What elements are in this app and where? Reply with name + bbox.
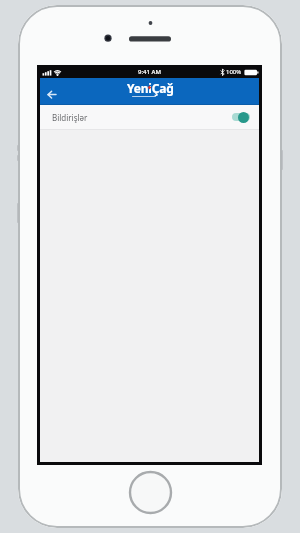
staticText: Bildirişlər: [52, 112, 88, 123]
button[interactable]: [232, 111, 250, 123]
staticText: 9:41 AM: [138, 68, 161, 76]
button[interactable]: Bildirişlər: [40, 105, 259, 129]
staticText: YeniÇağ: [127, 80, 174, 96]
staticText: 100%: [226, 68, 242, 76]
button[interactable]: [40, 80, 64, 107]
